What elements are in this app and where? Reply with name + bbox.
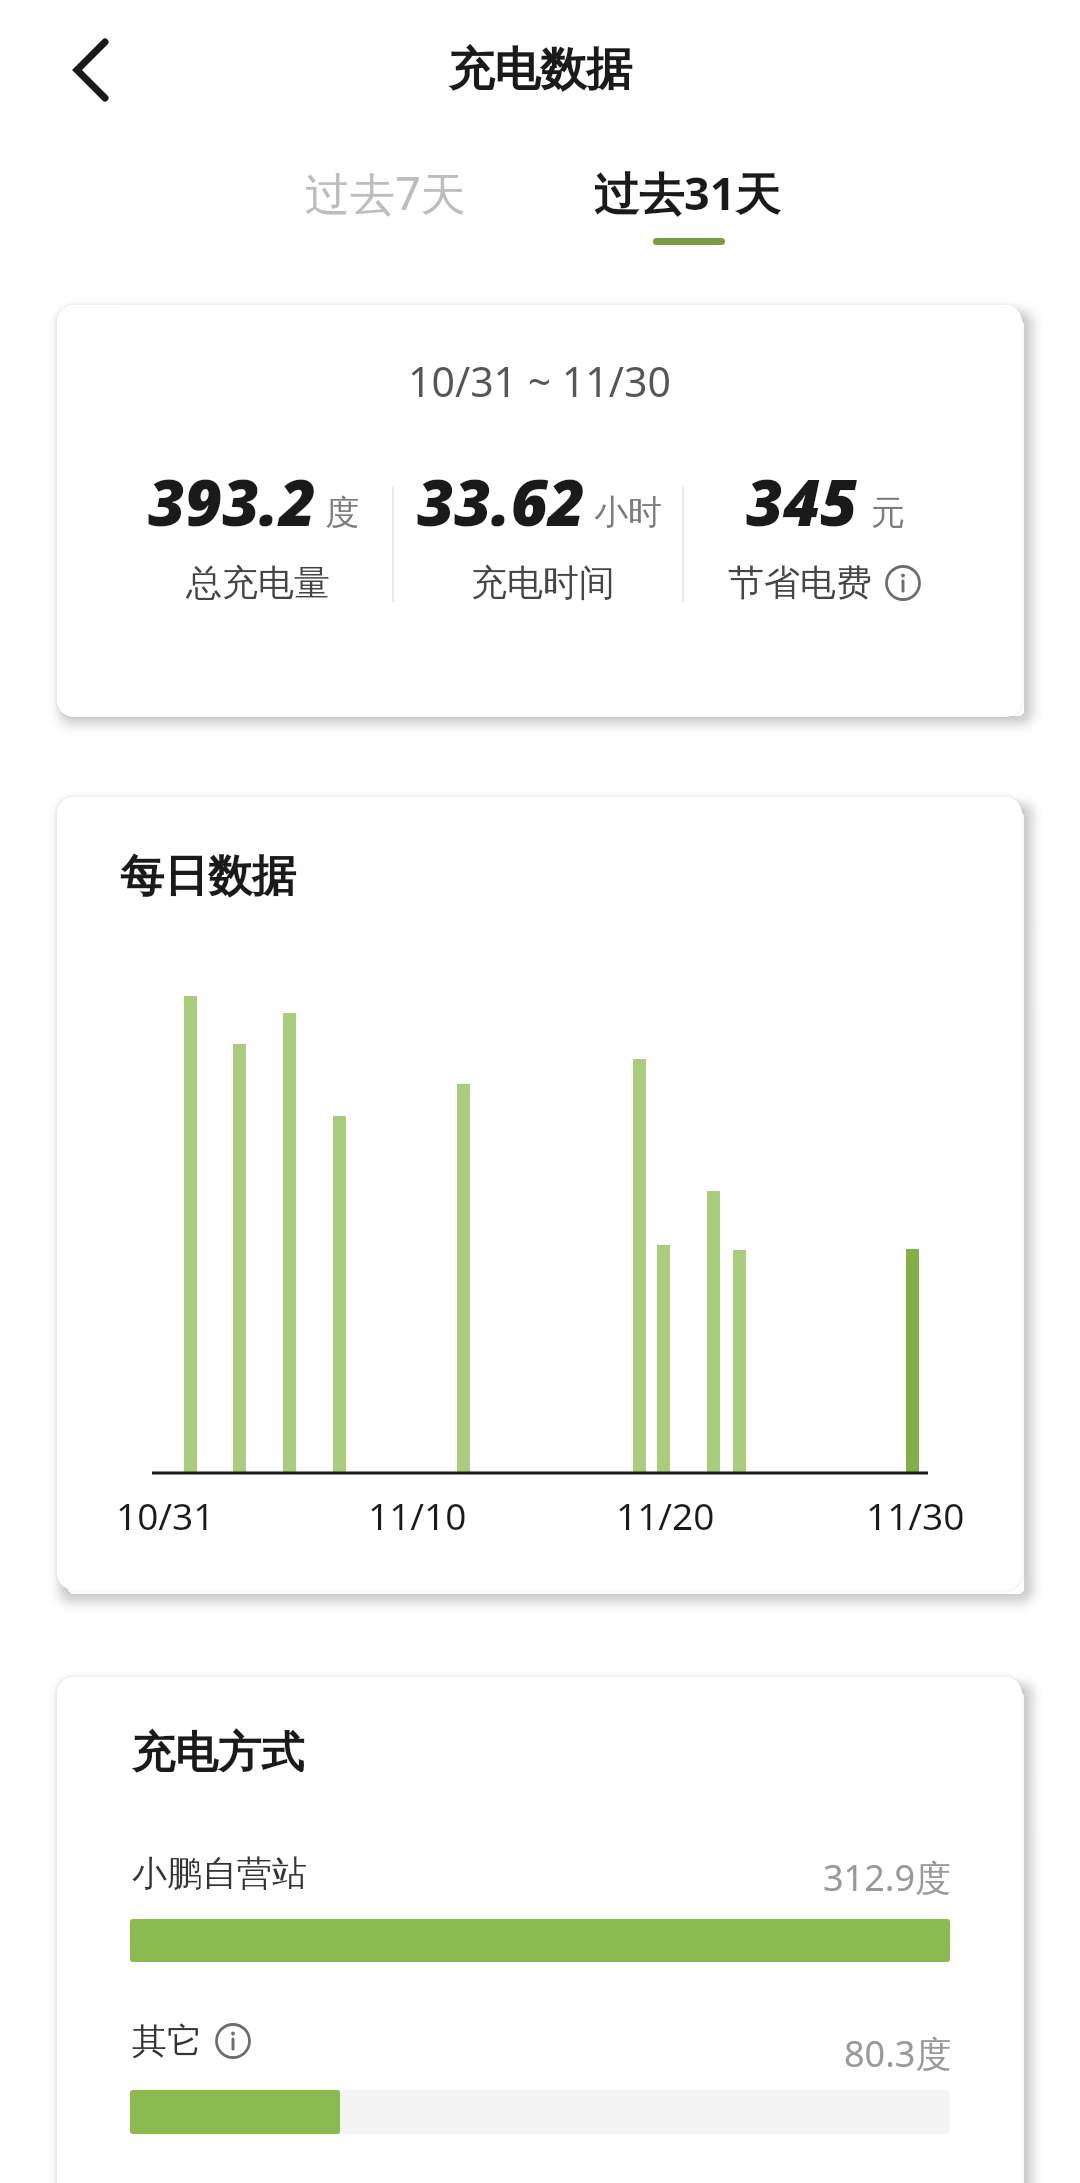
button[interactable] <box>883 563 923 603</box>
staticText: 其它 <box>132 2019 202 2063</box>
staticText: 312.9度 <box>823 1853 952 1902</box>
button[interactable]: 过去31天 <box>557 147 817 237</box>
staticText: 10/31 ~ 11/30 <box>408 353 671 409</box>
staticText: 小时 <box>594 491 662 534</box>
staticText: 10/31 <box>116 1490 215 1540</box>
staticText: 80.3度 <box>844 2029 952 2078</box>
staticText: 过去7天 <box>305 162 466 223</box>
staticText: 345 <box>746 458 858 545</box>
staticText: 充电时间 <box>471 560 615 605</box>
staticText: 33.62 <box>417 458 586 545</box>
staticText: 充电数据 <box>448 41 632 99</box>
staticText: 过去31天 <box>594 162 781 223</box>
button[interactable] <box>213 2021 253 2061</box>
button[interactable] <box>55 28 131 112</box>
staticText: 11/10 <box>368 1490 467 1540</box>
staticText: 充电方式 <box>132 1726 304 1780</box>
staticText: 每日数据 <box>120 849 296 904</box>
staticText: 度 <box>325 491 359 534</box>
staticText: 11/30 <box>866 1490 965 1540</box>
staticText: 小鹏自营站 <box>132 1851 307 1895</box>
staticText: 393.2 <box>148 458 317 545</box>
button[interactable]: 过去7天 <box>255 147 515 237</box>
staticText: 总充电量 <box>186 560 330 605</box>
staticText: 节省电费 <box>728 560 872 605</box>
staticText: 元 <box>871 491 905 534</box>
staticText: 11/20 <box>616 1490 715 1540</box>
